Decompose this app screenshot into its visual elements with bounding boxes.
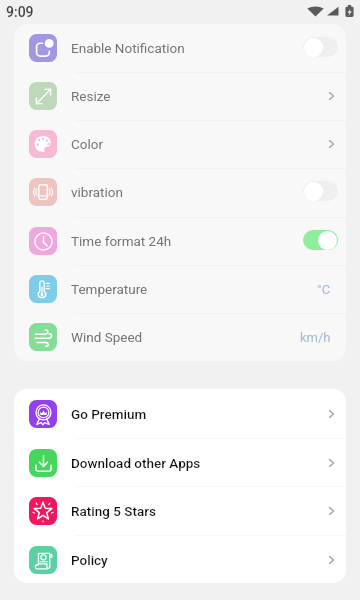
button[interactable]: Temperature xyxy=(14,265,346,313)
other: Policy xyxy=(324,553,338,567)
button[interactable]: Toggle on xyxy=(303,230,338,250)
staticText: Wind Speed xyxy=(71,329,143,345)
staticText: Enable Notification xyxy=(71,40,185,56)
staticText: Policy xyxy=(71,552,108,568)
staticText: Color xyxy=(71,136,104,152)
button[interactable]: Time format 24h xyxy=(14,217,346,265)
staticText: Download other Apps xyxy=(71,455,201,471)
other: Rating 5 Stars xyxy=(324,504,338,518)
staticText: km/h xyxy=(300,330,331,345)
staticText: Time format 24h xyxy=(71,233,172,249)
button[interactable]: Policy xyxy=(14,535,346,583)
button[interactable]: Enable Notification xyxy=(14,24,346,72)
button[interactable]: Toggle off xyxy=(303,37,338,57)
staticText: Resize xyxy=(71,88,111,104)
button[interactable]: Toggle off xyxy=(303,181,338,201)
button[interactable]: vibration xyxy=(14,168,346,216)
button[interactable]: Color xyxy=(14,120,346,168)
staticText: Temperature xyxy=(71,281,148,297)
button[interactable]: Go Premium xyxy=(14,389,346,438)
other: Go Premium xyxy=(324,407,338,421)
staticText: Rating 5 Stars xyxy=(71,503,156,519)
button[interactable]: Rating 5 Stars xyxy=(14,486,346,535)
staticText: Go Premium xyxy=(71,406,147,422)
other: Download other Apps xyxy=(324,456,338,470)
other: Resize xyxy=(324,89,338,103)
staticText: 9:09 xyxy=(6,4,34,20)
button[interactable]: Download other Apps xyxy=(14,438,346,487)
staticText: °C xyxy=(317,282,331,297)
button[interactable]: Wind Speed xyxy=(14,313,346,361)
button[interactable]: Resize xyxy=(14,72,346,120)
other: Color xyxy=(324,137,338,151)
staticText: vibration xyxy=(71,184,123,200)
